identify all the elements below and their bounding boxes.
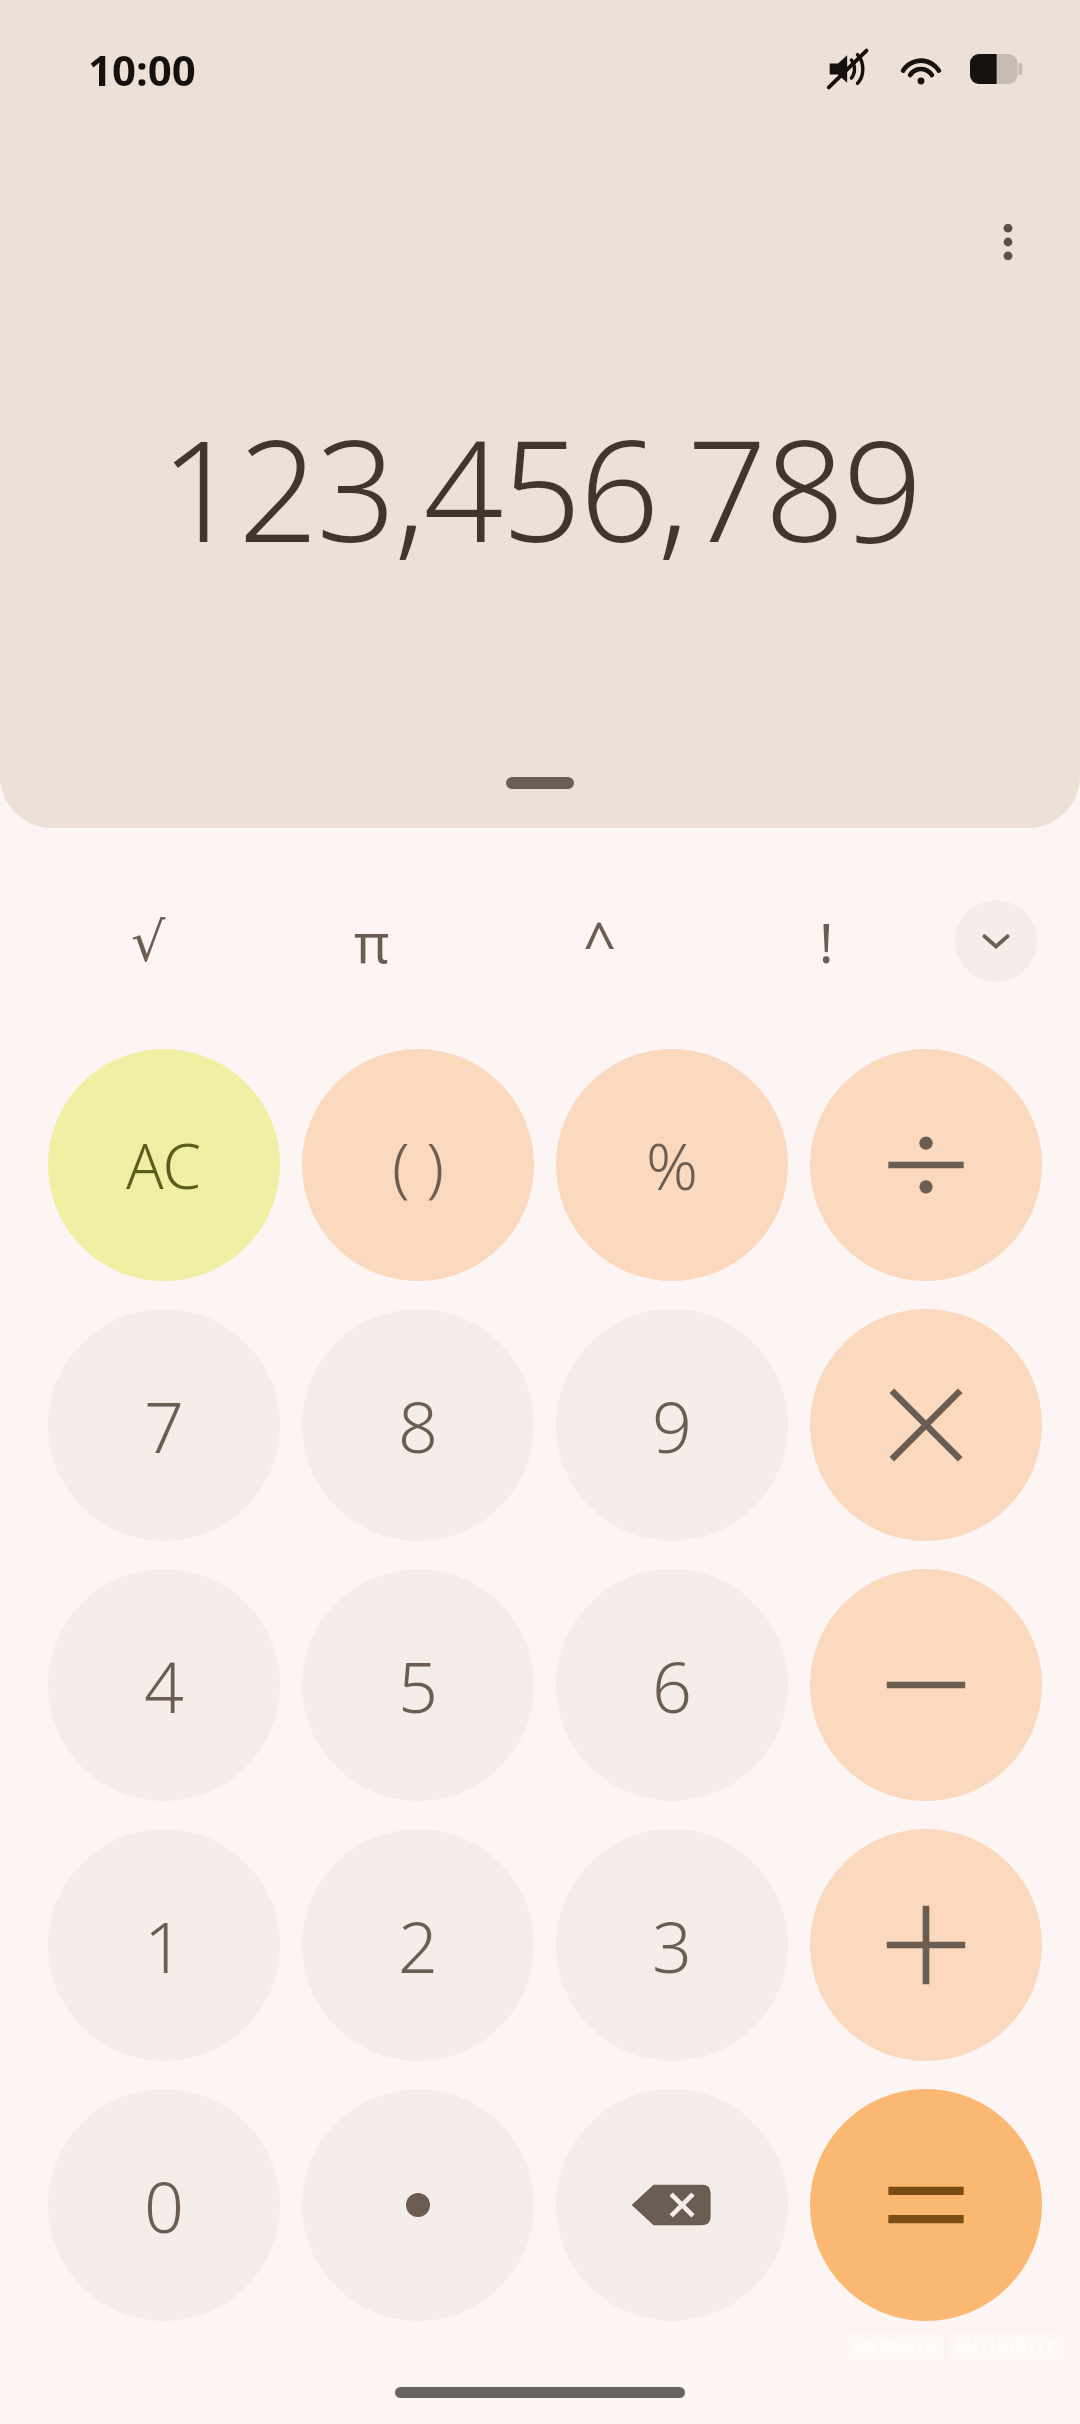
staticText: 0 <box>144 2158 184 2253</box>
button[interactable]: 4 <box>48 1569 280 1801</box>
staticText: ^ <box>583 903 617 982</box>
button[interactable]: 5 <box>302 1569 534 1801</box>
staticText: ! <box>819 905 834 979</box>
button[interactable]: ! <box>756 872 896 1012</box>
button[interactable]: Decimal point <box>302 2089 534 2321</box>
button[interactable]: Divide <box>810 1049 1042 1281</box>
button[interactable]: 6 <box>556 1569 788 1801</box>
button[interactable]: ( ) <box>302 1049 534 1281</box>
button[interactable]: 7 <box>48 1309 280 1541</box>
staticText: AC <box>126 1123 202 1207</box>
staticText: % <box>646 1122 698 1209</box>
button[interactable]: ^ <box>530 872 670 1012</box>
staticText: ( ) <box>392 1122 445 1209</box>
button[interactable]: 2 <box>302 1829 534 2061</box>
button[interactable]: More options <box>958 192 1058 292</box>
staticText: 9 <box>652 1378 692 1473</box>
staticText: 5 <box>398 1638 438 1733</box>
button[interactable]: Add <box>810 1829 1042 2061</box>
button[interactable]: AC <box>48 1049 280 1281</box>
staticText: 123,456,789 <box>160 392 921 583</box>
button[interactable]: Backspace <box>556 2089 788 2321</box>
staticText: 10:00 <box>88 41 196 98</box>
staticText: 4 <box>144 1638 184 1733</box>
button[interactable]: 0 <box>48 2089 280 2321</box>
button[interactable]: 9 <box>556 1309 788 1541</box>
button[interactable]: Equals <box>810 2089 1042 2321</box>
staticText: 2 <box>398 1898 438 1993</box>
button[interactable]: 8 <box>302 1309 534 1541</box>
button[interactable]: Subtract <box>810 1569 1042 1801</box>
button[interactable]: Expand history <box>460 752 620 814</box>
staticText: 6 <box>652 1638 692 1733</box>
button[interactable]: 1 <box>48 1829 280 2061</box>
staticText: 1 <box>144 1898 184 1993</box>
button[interactable]: % <box>556 1049 788 1281</box>
staticText: √ <box>131 911 166 974</box>
button[interactable]: √ <box>78 872 218 1012</box>
staticText: 7 <box>144 1378 184 1473</box>
button[interactable]: π <box>302 872 442 1012</box>
button[interactable]: 3 <box>556 1829 788 2061</box>
staticText: π <box>354 905 390 979</box>
staticText: 3 <box>652 1898 692 1993</box>
button[interactable]: Multiply <box>810 1309 1042 1541</box>
button[interactable]: More functions <box>955 900 1037 982</box>
staticText: 8 <box>398 1378 438 1473</box>
